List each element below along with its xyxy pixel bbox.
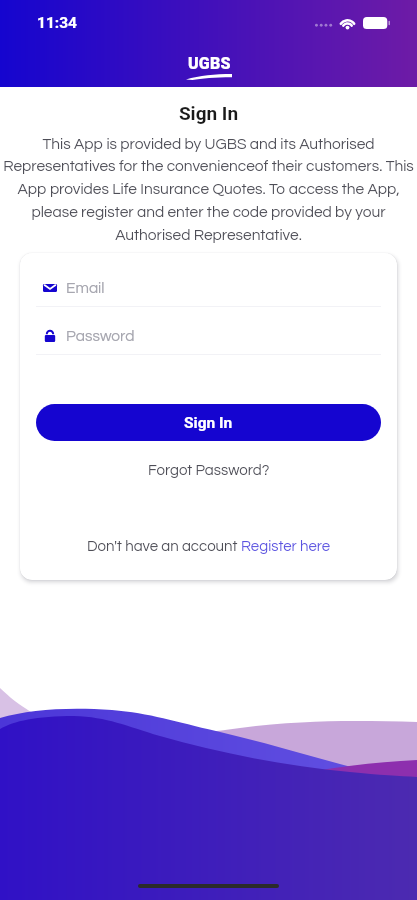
other: Email bbox=[43, 281, 57, 295]
button[interactable]: Forgot Password? bbox=[138, 461, 280, 480]
other: UGBS logo bbox=[186, 54, 232, 80]
staticText: 11:34 bbox=[37, 14, 77, 32]
staticText: This App is provided by UGBS and its Aut… bbox=[2, 136, 415, 244]
staticText: Don't have an account bbox=[87, 539, 241, 554]
button[interactable]: Register here bbox=[241, 539, 331, 554]
button[interactable]: Password bbox=[43, 325, 379, 347]
staticText: Sign In bbox=[184, 414, 233, 432]
other: Password bbox=[43, 329, 57, 343]
button[interactable]: Sign In bbox=[36, 404, 381, 441]
staticText: Sign In bbox=[0, 102, 417, 124]
button[interactable]: Email bbox=[43, 277, 379, 299]
staticText: Email bbox=[66, 280, 105, 296]
staticText: UGBS bbox=[188, 54, 231, 73]
staticText: Password bbox=[66, 328, 135, 344]
